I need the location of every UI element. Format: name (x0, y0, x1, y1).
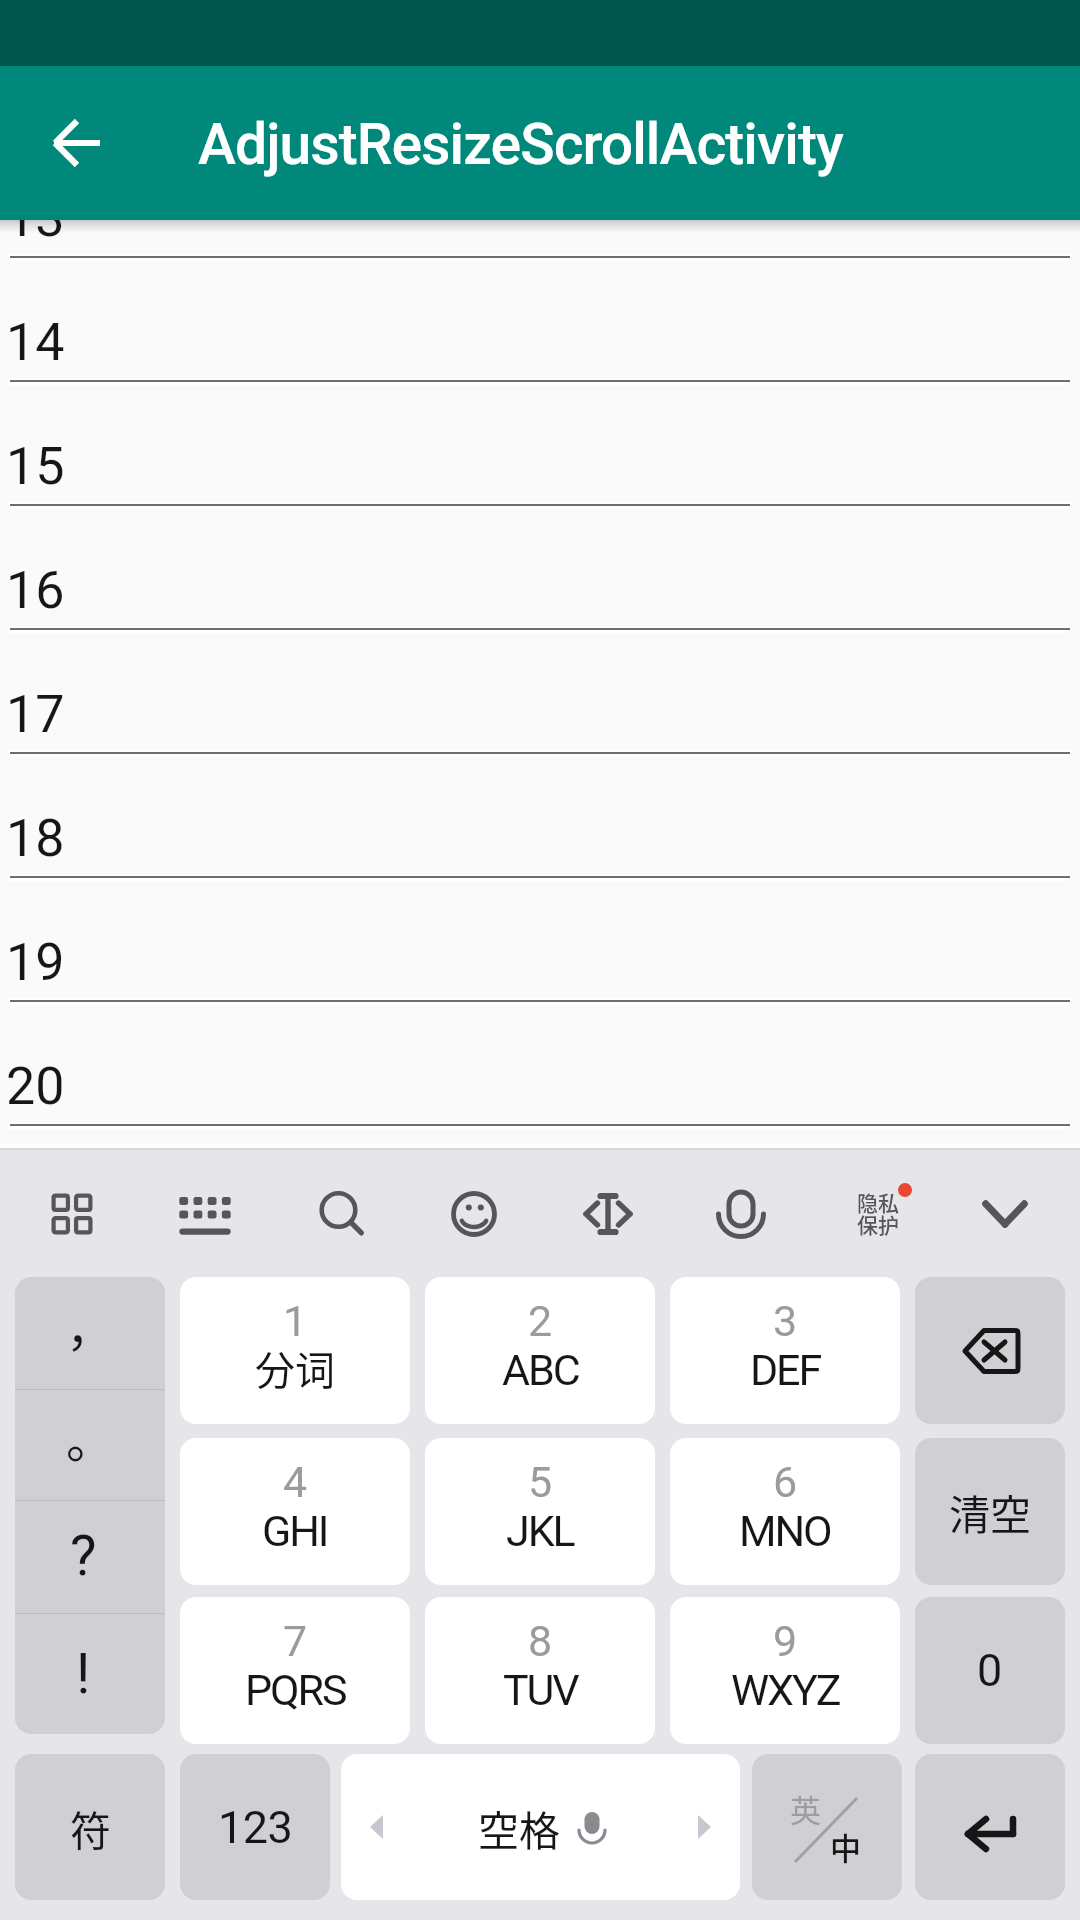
button[interactable]: Apps (14, 1156, 130, 1272)
button[interactable]: 6 (670, 1438, 900, 1585)
staticText: 4 (283, 1457, 308, 1507)
staticText: 17 (6, 684, 65, 745)
button[interactable]: Voice input (683, 1156, 799, 1272)
staticText: AdjustResizeScrollActivity (198, 111, 843, 178)
staticText: 18 (6, 808, 65, 869)
staticText: JKL (506, 1506, 574, 1556)
button[interactable] (0, 383, 1080, 505)
staticText: 3 (773, 1296, 798, 1346)
staticText: 保护 (857, 1209, 899, 1239)
staticText: 9 (773, 1616, 798, 1666)
staticText: 1 (283, 1296, 308, 1346)
button[interactable]: Emoji (416, 1156, 532, 1272)
button[interactable]: ! (15, 1613, 165, 1734)
staticText: 14 (6, 312, 65, 373)
staticText: 符 (70, 1798, 111, 1857)
staticText: 19 (6, 932, 65, 993)
button[interactable]: Back (29, 95, 125, 191)
staticText: MNO (739, 1506, 831, 1556)
button[interactable] (0, 1003, 1080, 1125)
staticText: 15 (6, 436, 65, 497)
button[interactable]: 3 (670, 1277, 900, 1424)
staticText: 20 (6, 1056, 65, 1117)
staticText: 8 (528, 1616, 553, 1666)
button[interactable]: 符 (15, 1754, 165, 1900)
staticText: ， (66, 1290, 115, 1360)
button[interactable]: 2 (425, 1277, 655, 1424)
staticText: ! (76, 1641, 91, 1707)
staticText: 16 (6, 560, 65, 621)
staticText: 清空 (949, 1482, 1031, 1541)
button[interactable]: Enter (915, 1754, 1065, 1900)
staticText: 6 (773, 1457, 798, 1507)
staticText: 123 (218, 1801, 293, 1854)
staticText: 5 (528, 1457, 553, 1507)
staticText: 13 (6, 188, 65, 249)
button[interactable]: ， (15, 1277, 165, 1389)
staticText: 隐私 (857, 1187, 899, 1217)
staticText: 英 (790, 1786, 821, 1831)
staticText: 。 (66, 1402, 115, 1472)
staticText: ABC (502, 1345, 579, 1395)
button[interactable]: Hide keyboard (947, 1156, 1063, 1272)
button[interactable]: Switch language (752, 1754, 902, 1900)
staticText: PQRS (245, 1665, 346, 1715)
button[interactable]: ? (15, 1500, 165, 1612)
staticText: 分词 (255, 1339, 335, 1397)
button[interactable]: 7 (180, 1597, 410, 1744)
button[interactable]: Keyboard layout (147, 1156, 263, 1272)
button[interactable]: 5 (425, 1438, 655, 1585)
staticText: GHI (262, 1506, 328, 1556)
staticText: ? (70, 1523, 97, 1589)
staticText: 空格 (478, 1798, 560, 1857)
button[interactable]: 9 (670, 1597, 900, 1744)
staticText: 0 (977, 1644, 1003, 1697)
staticText: 中 (830, 1824, 861, 1869)
staticText: DEF (750, 1345, 821, 1395)
button[interactable]: 1 (180, 1277, 410, 1424)
button[interactable] (0, 218, 1080, 257)
button[interactable]: Privacy protection (820, 1156, 936, 1272)
staticText: 7 (283, 1616, 308, 1666)
button[interactable] (0, 879, 1080, 1001)
button[interactable]: 。 (15, 1389, 165, 1501)
button[interactable] (0, 507, 1080, 629)
button[interactable]: Backspace (915, 1277, 1065, 1424)
staticText: TUV (503, 1665, 578, 1715)
button[interactable]: Search (282, 1156, 398, 1272)
button[interactable] (0, 631, 1080, 753)
button[interactable] (0, 259, 1080, 381)
button[interactable]: Text editing (550, 1156, 666, 1272)
button[interactable]: 123 (180, 1754, 330, 1900)
button[interactable]: 4 (180, 1438, 410, 1585)
staticText: 2 (528, 1296, 553, 1346)
button[interactable]: 0 (915, 1597, 1065, 1744)
button[interactable]: 清空 (915, 1438, 1065, 1585)
button[interactable]: 空格 (341, 1754, 740, 1900)
button[interactable]: 8 (425, 1597, 655, 1744)
staticText: WXYZ (731, 1665, 840, 1715)
button[interactable] (0, 755, 1080, 877)
